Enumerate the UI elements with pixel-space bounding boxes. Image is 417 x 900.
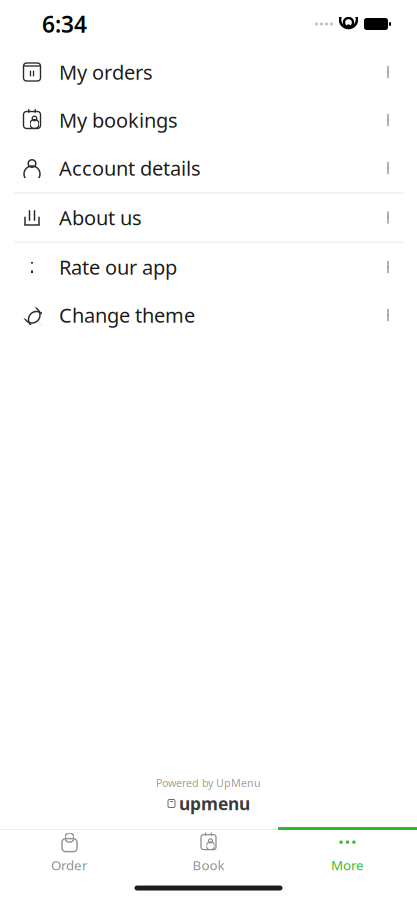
staticText: More	[331, 856, 364, 874]
button[interactable]: Rate our app	[0, 243, 417, 291]
button[interactable]: More	[278, 830, 417, 876]
staticText: Change theme	[59, 302, 195, 328]
staticText: Order	[51, 856, 88, 874]
staticText: upmenu	[179, 792, 250, 815]
button[interactable]: Change theme	[0, 291, 417, 339]
staticText: About us	[59, 204, 142, 231]
staticText: 6:34	[42, 9, 87, 39]
staticText: Powered by UpMenu	[156, 776, 261, 790]
button[interactable]: My bookings	[0, 96, 417, 144]
staticText: My bookings	[59, 107, 178, 133]
button[interactable]: My orders	[0, 48, 417, 96]
button[interactable]: Order	[0, 830, 139, 876]
staticText: Book	[192, 856, 224, 874]
staticText: Account details	[59, 155, 201, 181]
staticText: Rate our app	[59, 254, 177, 280]
staticText: My orders	[59, 59, 153, 85]
button[interactable]: About us	[0, 193, 417, 241]
button[interactable]: Account details	[0, 144, 417, 192]
button[interactable]: Book	[139, 830, 278, 876]
